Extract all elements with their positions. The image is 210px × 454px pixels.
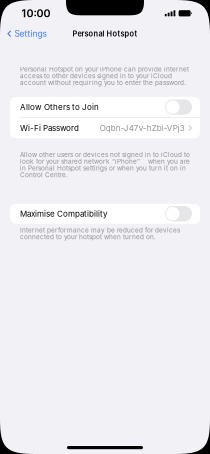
- staticText: Maximise Compatibility: [20, 209, 107, 219]
- staticText: Allow Others to Join: [20, 102, 99, 112]
- staticText: 10:00: [21, 7, 50, 20]
- button[interactable]: Allow Others to Join: [10, 97, 200, 117]
- staticText: Settings: [15, 28, 48, 39]
- button[interactable]: Wi-Fi Password: [10, 118, 200, 138]
- staticText: Personal Hotspot: [72, 29, 137, 38]
- staticText: Wi-Fi Password: [20, 123, 79, 133]
- staticText: Internet performance may be reduced for …: [20, 226, 180, 241]
- staticText: Personal Hotspot on your iPhone can prov…: [20, 65, 189, 87]
- button[interactable]: Maximise Compatibility: [10, 204, 200, 224]
- staticText: Oqbn-J47v-hZbi-VPj3: [100, 123, 185, 133]
- button[interactable]: Settings: [0, 26, 53, 41]
- staticText: Allow other users or devices not signed …: [20, 151, 190, 179]
